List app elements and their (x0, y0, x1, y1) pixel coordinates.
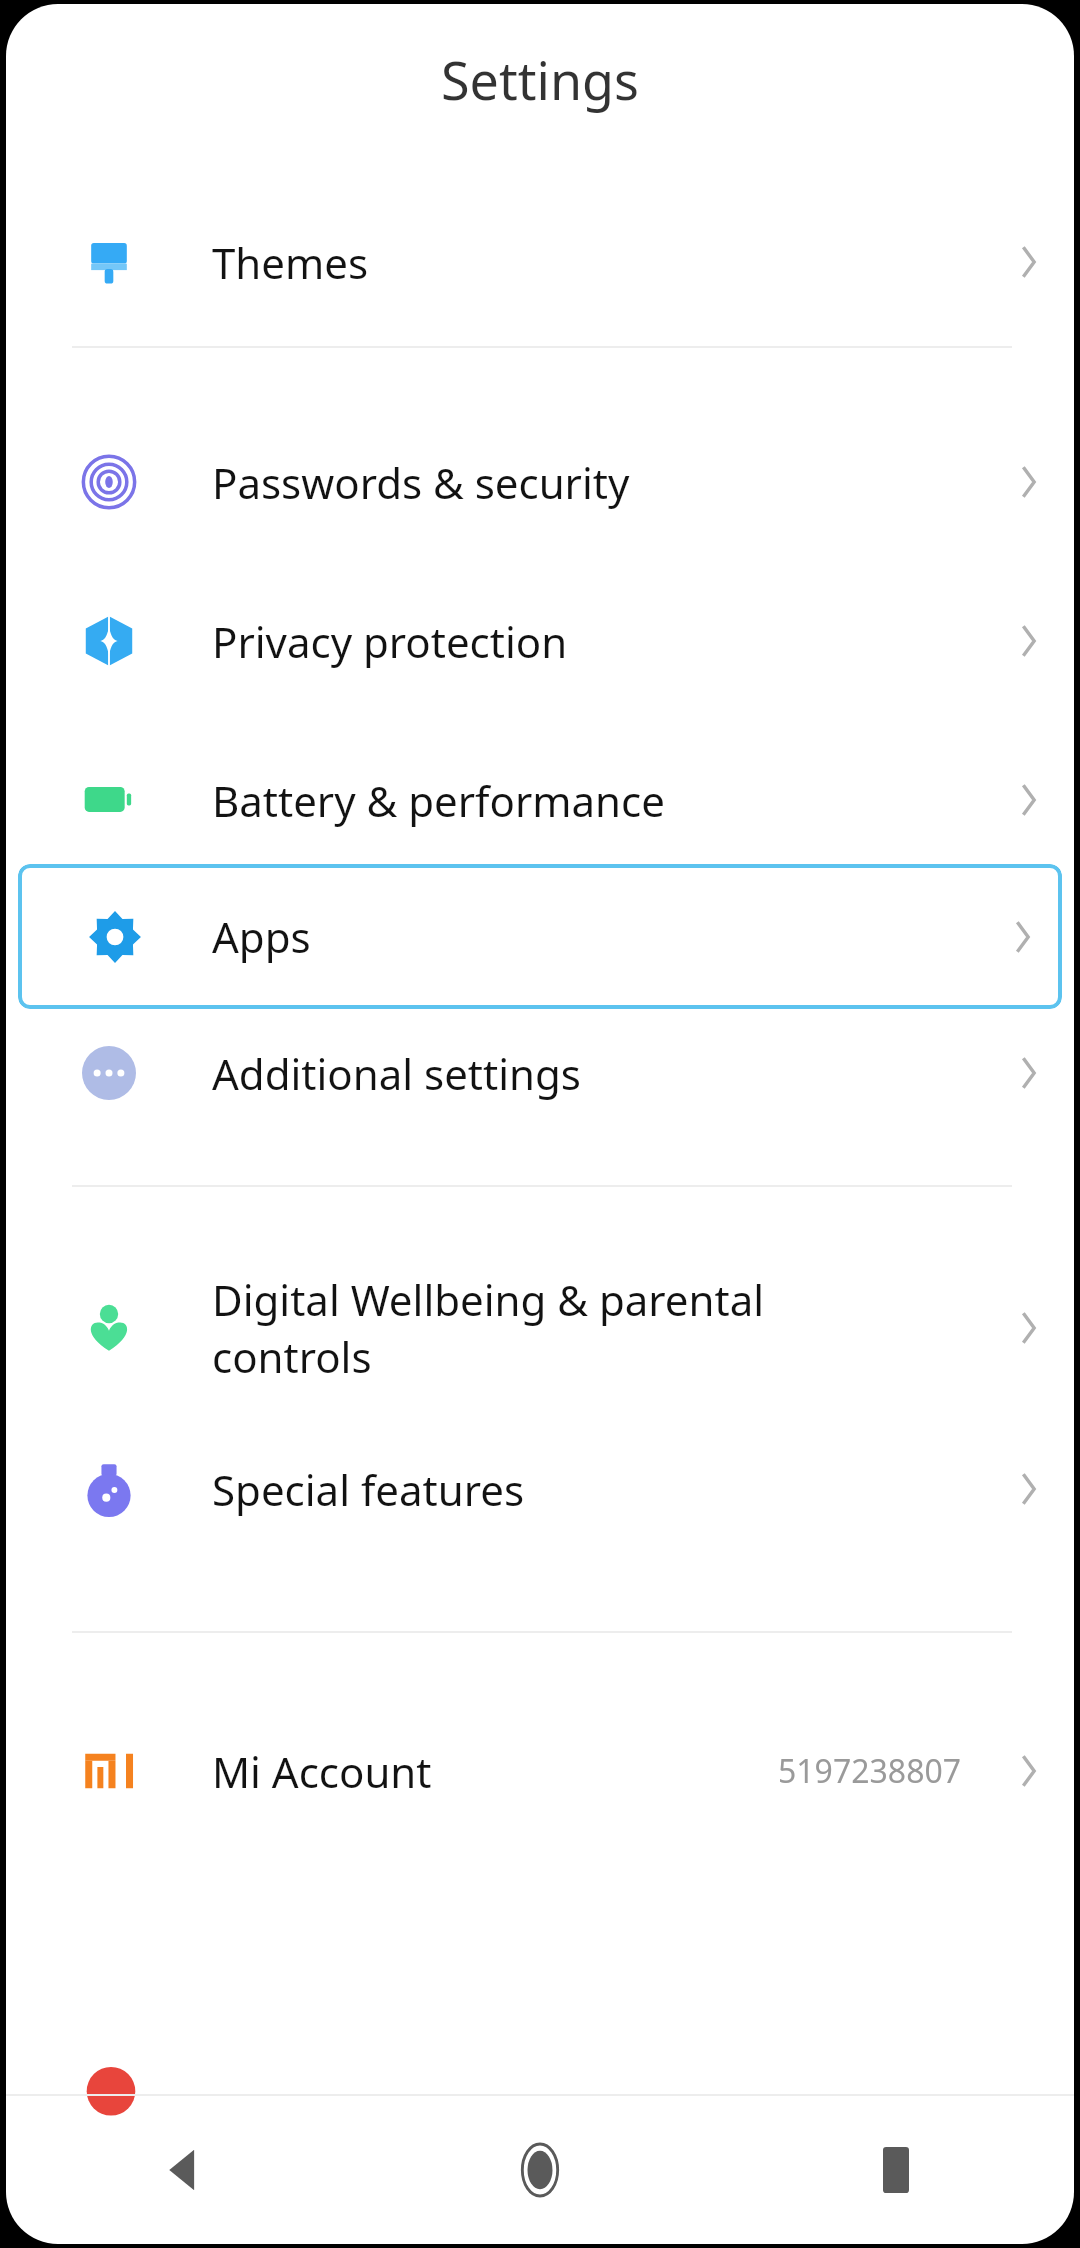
button[interactable]: Recent apps (718, 2096, 1074, 2244)
button[interactable]: Passwords & security (6, 432, 1074, 532)
staticText: Special features (212, 1461, 525, 1518)
button[interactable]: Privacy protection (6, 591, 1074, 691)
staticText: Digital Wellbeing & parental (212, 1271, 765, 1328)
staticText: Privacy protection (212, 613, 568, 670)
button[interactable]: Home (362, 2096, 718, 2244)
staticText: Passwords & security (212, 454, 630, 511)
button[interactable]: Mi Account (6, 1721, 1074, 1821)
staticText: Mi Account (212, 1743, 432, 1800)
staticText: 5197238807 (778, 1749, 962, 1793)
staticText: Additional settings (212, 1045, 581, 1102)
staticText: Themes (212, 234, 369, 291)
button[interactable]: Special features (6, 1439, 1074, 1539)
button[interactable]: Back (6, 2096, 362, 2244)
button[interactable]: Digital Wellbeing & parental (6, 1253, 1074, 1403)
staticText: controls (212, 1328, 372, 1385)
button[interactable]: Apps (18, 864, 1062, 1009)
staticText: Settings (441, 44, 639, 115)
staticText: Battery & performance (212, 772, 665, 829)
button[interactable]: Additional settings (6, 1023, 1074, 1123)
button[interactable]: Battery & performance (6, 750, 1074, 850)
staticText: Apps (212, 908, 311, 965)
button[interactable]: Themes (6, 212, 1074, 312)
